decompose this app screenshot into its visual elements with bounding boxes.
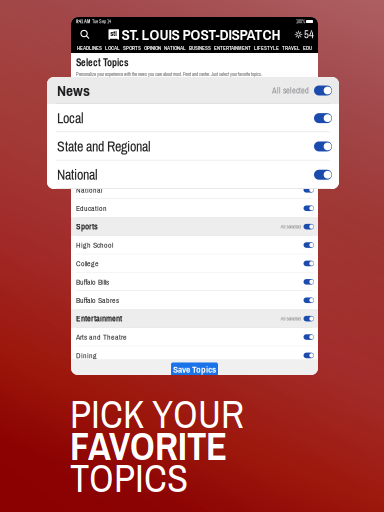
button[interactable]: Education (71, 199, 318, 217)
staticText: FAVORITE (70, 420, 227, 472)
staticText: Local (57, 109, 84, 128)
staticText: Arts and Theatre (76, 332, 127, 342)
button[interactable]: Weather, 54 degrees (294, 26, 314, 43)
button[interactable]: Local (47, 104, 339, 132)
staticText: High School (76, 240, 113, 250)
staticText: Dining (76, 350, 97, 361)
button[interactable]: Save Topics (171, 362, 218, 376)
staticText: 100% (296, 18, 305, 24)
button[interactable]: College (71, 254, 318, 273)
button[interactable]: State and Regional (47, 132, 339, 161)
staticText: Buffalo Sabres (76, 295, 119, 305)
button[interactable]: High School (71, 236, 318, 254)
staticText: National (57, 165, 98, 184)
button[interactable]: Movies (71, 365, 318, 383)
staticText: News (76, 129, 94, 140)
button[interactable]: Buffalo Bills (71, 273, 318, 291)
button[interactable]: News (47, 77, 339, 104)
staticText: PICK YOUR (70, 388, 244, 440)
staticText: Local (76, 148, 92, 158)
staticText: Entertainment (76, 313, 122, 324)
staticText: State and Regional (57, 137, 151, 156)
button[interactable]: State and Regional (71, 162, 318, 181)
staticText: Tue Sep 14 (90, 18, 111, 25)
button[interactable]: National (71, 181, 318, 199)
staticText: Personalize your experience with the new… (76, 71, 262, 77)
staticText: 54 (304, 27, 314, 42)
button[interactable]: Entertainment (71, 309, 318, 328)
staticText: State and Regional (76, 166, 136, 177)
staticText: Movies (76, 369, 97, 379)
button[interactable]: Local (71, 144, 318, 162)
staticText: All selected (280, 131, 300, 138)
staticText: National (76, 185, 102, 195)
staticText: HEADLINES LOCAL SPORTS OPINION NATIONAL … (77, 44, 312, 52)
staticText: 9:41 AM (76, 18, 90, 25)
staticText: ST. LOUIS POST-DISPATCH (121, 24, 280, 45)
button[interactable]: Sports (71, 217, 318, 236)
staticText: Buffalo Bills (76, 277, 109, 287)
button[interactable]: News (71, 125, 318, 144)
staticText: Education (76, 203, 107, 213)
staticText: All selected (272, 85, 309, 96)
button[interactable]: National (47, 161, 339, 189)
staticText: stl (110, 29, 117, 38)
staticText: All selected (280, 223, 300, 230)
staticText: Select Topics (76, 56, 129, 69)
staticText: Save Topics (173, 363, 216, 376)
staticText: TOPICS (70, 452, 188, 504)
staticText: News (57, 80, 90, 101)
button[interactable]: Buffalo Sabres (71, 291, 318, 309)
button[interactable]: Dining (71, 346, 318, 365)
button[interactable]: Search (75, 26, 95, 43)
staticText: Sports (76, 221, 98, 232)
staticText: All selected (280, 315, 300, 322)
staticText: College (76, 258, 99, 269)
button[interactable]: Arts and Theatre (71, 328, 318, 346)
